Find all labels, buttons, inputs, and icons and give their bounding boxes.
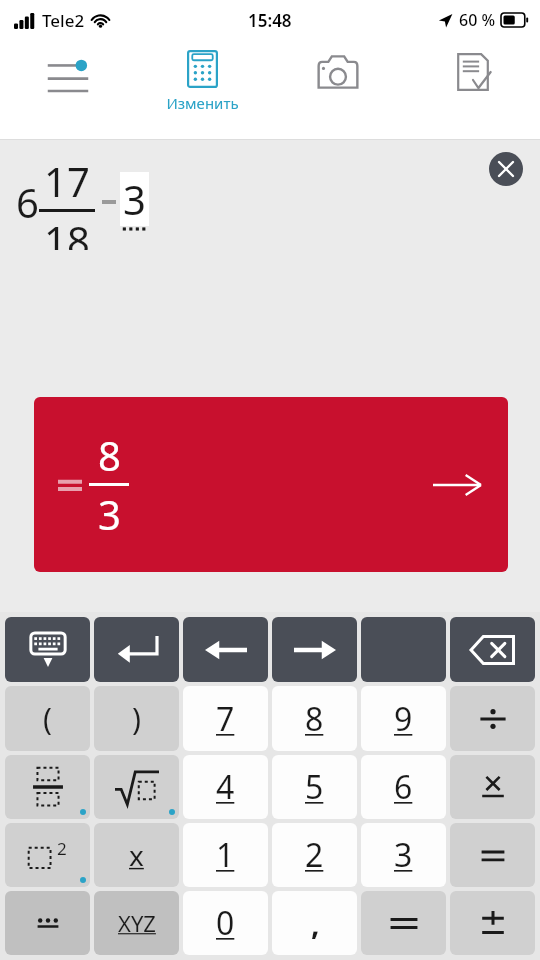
button[interactable]: Camera (270, 40, 405, 140)
staticText: 8 (98, 428, 121, 482)
button[interactable]: Backspace (450, 617, 535, 682)
staticText: XYZ (118, 908, 156, 938)
staticText: 6 (394, 765, 413, 809)
staticText: Tele2 (42, 9, 85, 32)
staticText: 17 (44, 154, 90, 208)
button[interactable]: 5 (272, 755, 357, 819)
button[interactable]: Minus (450, 823, 535, 887)
button[interactable]: 7 (183, 686, 268, 751)
button[interactable]: XYZ (94, 891, 179, 955)
button[interactable]: Close paren (94, 686, 179, 751)
button[interactable]: Square root (94, 755, 179, 819)
staticText: ) (132, 698, 141, 739)
button[interactable]: Tasks (405, 40, 540, 140)
button[interactable]: Plus minus (450, 891, 535, 955)
button[interactable]: Power (5, 823, 90, 887)
staticText: 15:48 (248, 9, 292, 32)
button[interactable]: Right (272, 617, 357, 682)
button[interactable]: Divide (450, 686, 535, 751)
button[interactable]: Open paren (5, 686, 90, 751)
button[interactable]: Left (183, 617, 268, 682)
staticText: x (129, 836, 144, 874)
button[interactable]: More (5, 891, 90, 955)
staticText: 0 (216, 901, 235, 945)
button[interactable]: Fraction (5, 755, 90, 819)
button[interactable]: Изменить (135, 40, 270, 140)
button[interactable]: 8 (34, 397, 508, 572)
button[interactable]: Settings (0, 40, 135, 140)
staticText: Изменить (166, 93, 239, 113)
staticText: 6 (16, 175, 39, 229)
staticText: 60 % (459, 9, 496, 31)
button[interactable]: Multiply (450, 755, 535, 819)
staticText: 18 (44, 213, 90, 250)
staticText: 3 (98, 487, 121, 541)
staticText: 2 (305, 833, 324, 877)
button[interactable]: 1 (183, 823, 268, 887)
staticText: , (311, 903, 320, 943)
staticText: 5 (305, 765, 324, 809)
button[interactable]: 3 (361, 823, 446, 887)
button[interactable]: 0 (183, 891, 268, 955)
button[interactable]: Variable x (94, 823, 179, 887)
staticText: ( (43, 698, 52, 739)
staticText: 2 (57, 837, 67, 860)
button[interactable]: Comma (272, 891, 357, 955)
button[interactable]: 4 (183, 755, 268, 819)
button[interactable]: Blank (361, 617, 446, 682)
button[interactable]: Close (489, 152, 523, 186)
staticText: 9 (394, 697, 413, 741)
staticText: 3 (123, 172, 146, 226)
staticText: 1 (216, 833, 235, 877)
staticText: 3 (394, 833, 413, 877)
button[interactable]: 2 (272, 823, 357, 887)
button[interactable]: 6 (361, 755, 446, 819)
button[interactable]: Enter (94, 617, 179, 682)
staticText: 7 (216, 697, 235, 741)
button[interactable]: Equals (361, 891, 446, 955)
button[interactable]: 9 (361, 686, 446, 751)
button[interactable]: Keyboard down (5, 617, 90, 682)
staticText: 4 (216, 765, 235, 809)
button[interactable]: 8 (272, 686, 357, 751)
staticText: 8 (305, 697, 324, 741)
